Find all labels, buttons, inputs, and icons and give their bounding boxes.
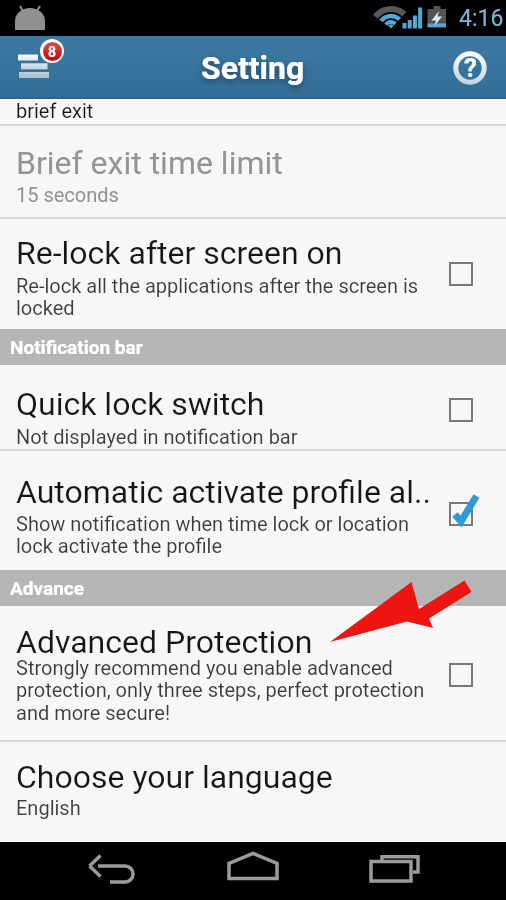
staticText: ? <box>464 53 477 83</box>
button[interactable] <box>218 842 288 900</box>
staticText: brief exit <box>16 99 94 122</box>
staticText: Quick lock switch <box>16 385 265 423</box>
button[interactable]: Advanced Protection <box>0 606 506 740</box>
staticText: Strongly recommend you enable advanced p… <box>16 656 425 725</box>
button[interactable]: 8 <box>0 36 72 99</box>
button[interactable]: Choose your language <box>0 742 506 842</box>
button[interactable]: ? <box>452 50 488 86</box>
staticText: Choose your language <box>16 758 333 796</box>
staticText: English <box>16 796 81 819</box>
staticText: Show notification when time lock or loca… <box>16 512 410 558</box>
button[interactable]: Brief exit time limit <box>0 126 506 217</box>
button[interactable]: Quick lock switch <box>0 365 506 449</box>
staticText: Brief exit time limit <box>16 144 283 182</box>
button[interactable]: brief exit <box>0 99 506 124</box>
staticText: Notification bar <box>10 336 143 358</box>
staticText: Not displayed in notification bar <box>16 425 298 448</box>
button[interactable]: Automatic activate profile al.. <box>0 451 506 570</box>
staticText: 15 seconds <box>16 183 119 206</box>
button[interactable] <box>360 842 430 900</box>
button[interactable] <box>78 842 148 900</box>
staticText: Automatic activate profile al.. <box>16 473 431 511</box>
staticText: Re-lock all the applications after the s… <box>16 274 419 320</box>
staticText: Advanced Protection <box>16 623 313 661</box>
staticText: Advance <box>10 577 84 599</box>
staticText: Setting <box>201 49 305 87</box>
button[interactable]: Re-lock after screen on <box>0 219 506 329</box>
staticText: 8 <box>48 44 57 60</box>
staticText: Re-lock after screen on <box>16 234 343 272</box>
staticText: 4:16 <box>459 5 504 32</box>
